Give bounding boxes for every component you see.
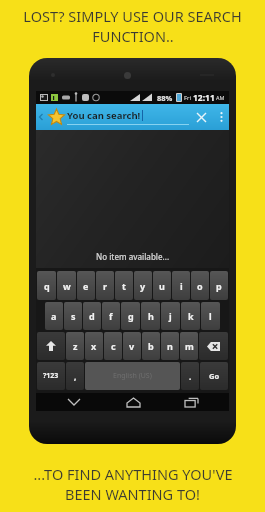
staticText: a [51,310,57,322]
staticText: Go [209,371,220,381]
staticText: BEEN WANTING TO! [65,484,200,504]
button[interactable]: j [161,302,180,330]
button[interactable]: a [45,302,63,330]
button[interactable]: m [180,332,198,360]
staticText: m [185,340,194,352]
staticText: 88% [157,93,173,103]
staticText: FUNCTION.. [92,26,174,46]
button[interactable]: ?123 [37,362,65,390]
staticText: y [140,280,146,292]
staticText: English (US) [113,371,152,381]
staticText: z [73,340,78,352]
button[interactable]: Clear search [189,104,213,130]
staticText: ?123 [43,371,59,381]
staticText: l [209,310,212,322]
button[interactable]: g [121,302,140,330]
staticText: o [197,280,203,292]
staticText: You can search! [67,109,141,122]
staticText: x [91,340,97,352]
staticText: p [216,280,222,292]
staticText: q [44,280,50,292]
staticText: t [122,280,126,292]
button[interactable]: Favorite [45,104,67,130]
staticText: d [89,310,95,322]
button[interactable]: Shift [37,332,65,360]
button[interactable]: o [191,271,209,300]
button[interactable]: c [104,332,122,360]
staticText: AM [216,94,225,101]
button[interactable]: n [161,332,179,360]
button[interactable]: r [96,271,114,300]
staticText: v [129,340,135,352]
button[interactable]: , [66,362,84,390]
button[interactable]: z [66,332,84,360]
button[interactable]: x [85,332,103,360]
button[interactable]: i [172,271,190,300]
button[interactable]: v [123,332,141,360]
staticText: j [169,310,172,322]
button[interactable]: l [201,302,220,330]
staticText: No item available... [96,251,170,262]
button[interactable]: Go [200,362,228,390]
staticText: 12:11 [193,92,215,104]
button[interactable]: d [83,302,101,330]
staticText: LOST? SIMPLY USE OUR SEARCH [23,6,242,26]
button[interactable]: w [57,271,76,300]
button[interactable]: q [37,271,56,300]
button[interactable]: Home [113,393,153,411]
button[interactable]: h [141,302,160,330]
staticText: , [74,371,77,382]
staticText: b [148,340,154,352]
button[interactable]: More options [213,104,229,130]
staticText: g [128,310,134,322]
button[interactable]: Recent apps [171,393,211,411]
staticText: s [71,310,76,322]
button[interactable]: p [210,271,228,300]
staticText: k [188,310,194,322]
button[interactable]: English (US) [85,362,180,390]
button[interactable]: b [142,332,160,360]
button[interactable]: e [77,271,95,300]
staticText: n [167,340,173,352]
button[interactable]: . [181,362,199,390]
button[interactable]: u [153,271,171,300]
button[interactable]: Hide keyboard [54,393,94,411]
staticText: ...TO FIND ANYTHING YOU'VE [33,464,233,484]
staticText: c [111,340,116,352]
button[interactable]: Back [36,104,45,130]
staticText: r [103,280,108,292]
staticText: i [180,280,183,292]
staticText: e [83,280,89,292]
button[interactable]: s [64,302,82,330]
staticText: . [189,371,192,382]
button[interactable]: Backspace [199,332,228,360]
button[interactable]: You can search! [67,108,189,126]
button[interactable]: y [134,271,152,300]
staticText: w [63,280,71,292]
button[interactable]: k [181,302,200,330]
staticText: f [109,310,113,322]
button[interactable]: f [102,302,120,330]
staticText: Fri [184,94,192,102]
staticText: h [148,310,154,322]
button[interactable]: t [115,271,133,300]
staticText: u [159,280,165,292]
